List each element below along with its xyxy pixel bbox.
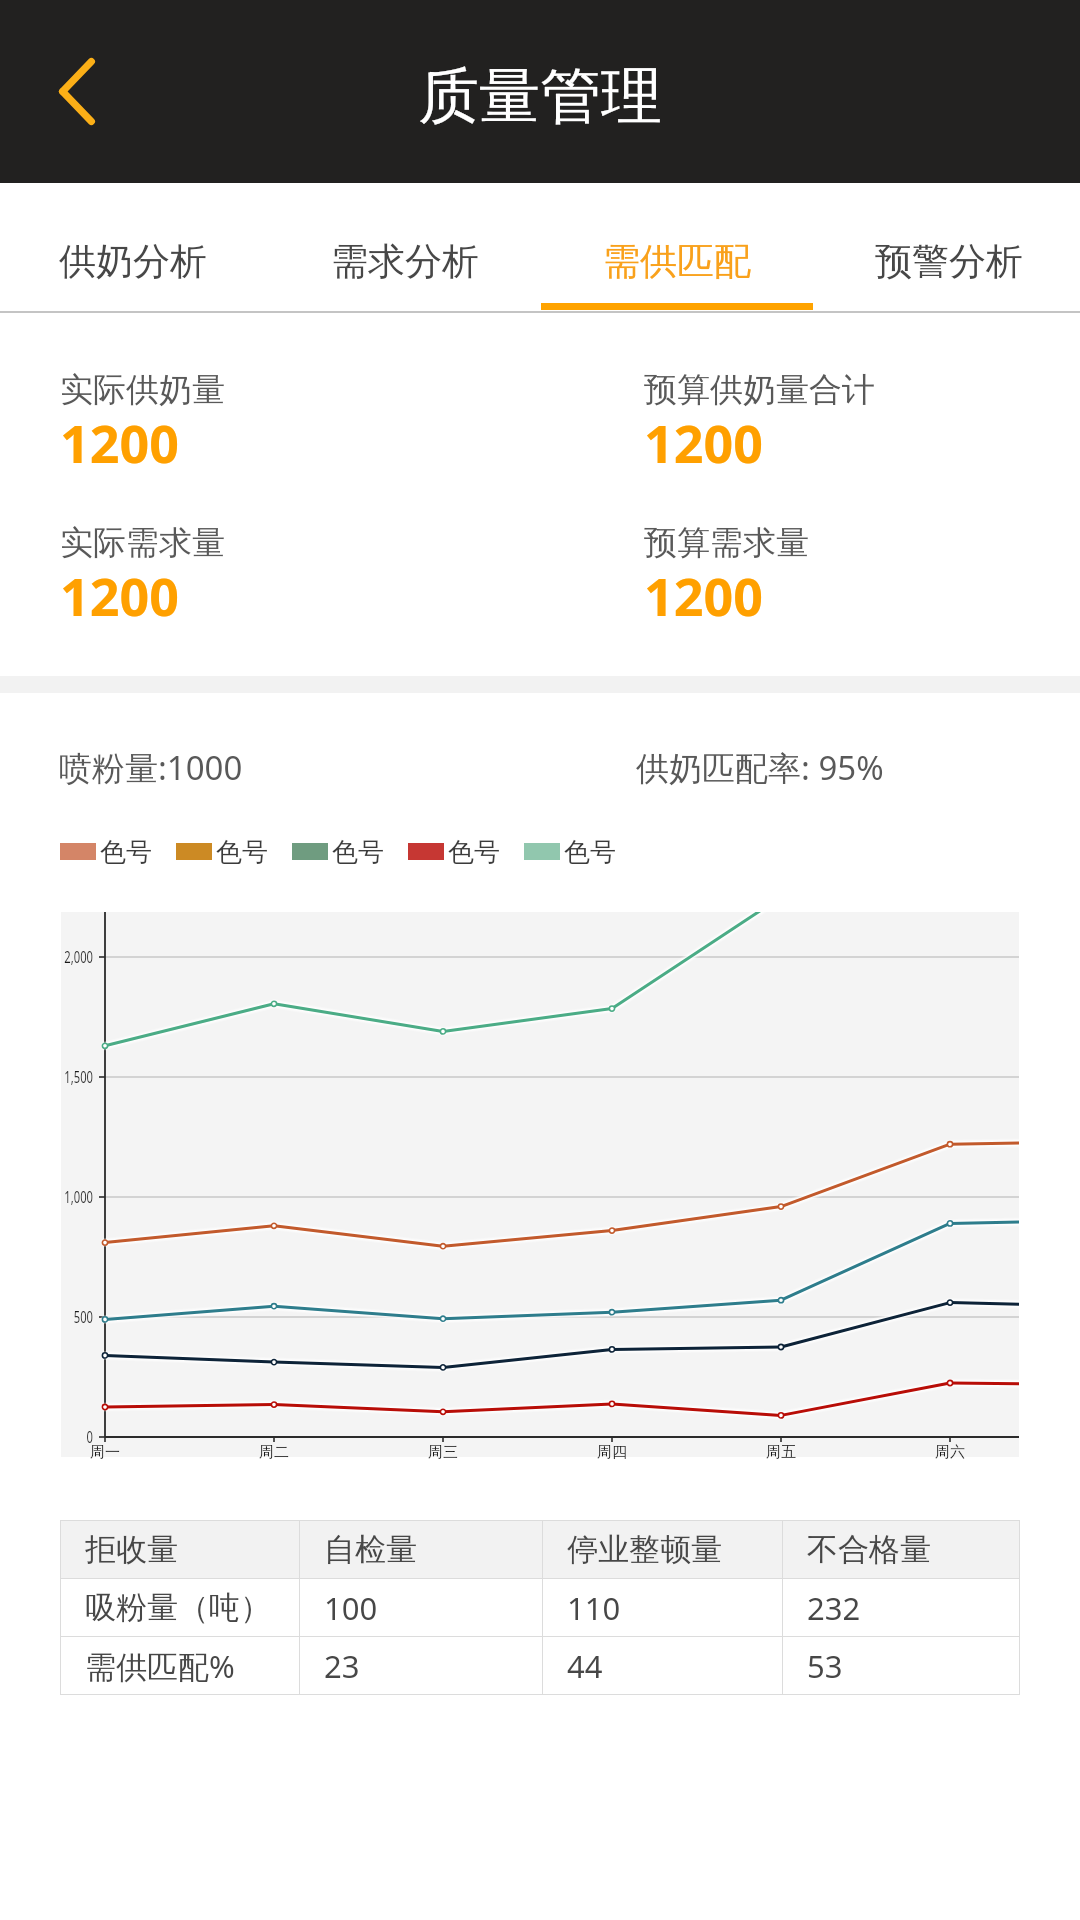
- staticText: 实际供奶量: [60, 369, 225, 411]
- button[interactable]: 100: [300, 1579, 542, 1636]
- button[interactable]: 预警分析: [813, 183, 1080, 311]
- button[interactable]: 供奶分析: [0, 183, 269, 311]
- staticText: 53: [807, 1645, 843, 1687]
- staticText: 需供匹配%: [85, 1645, 235, 1687]
- staticText: 2,000: [64, 946, 93, 968]
- button[interactable]: 53: [783, 1637, 1019, 1694]
- staticText: 110: [567, 1587, 621, 1629]
- staticText: 1,500: [64, 1066, 93, 1088]
- staticText: 质量管理: [418, 58, 662, 135]
- staticText: 实际需求量: [60, 522, 225, 564]
- staticText: 色号: [100, 836, 152, 869]
- button[interactable]: 需供匹配%: [61, 1637, 299, 1694]
- staticText: 色号: [448, 836, 500, 869]
- button[interactable]: 44: [543, 1637, 782, 1694]
- staticText: 232: [807, 1587, 861, 1629]
- button[interactable]: 不合格量: [783, 1521, 1019, 1578]
- staticText: 预算需求量: [644, 522, 809, 564]
- staticText: 吸粉量（吨）: [85, 1588, 271, 1627]
- button[interactable]: 自检量: [300, 1521, 542, 1578]
- button[interactable]: 拒收量: [61, 1521, 299, 1578]
- staticText: 1200: [60, 560, 179, 631]
- button[interactable]: 110: [543, 1579, 782, 1636]
- button[interactable]: 吸粉量（吨）: [61, 1579, 299, 1636]
- staticText: 0: [86, 1426, 93, 1448]
- staticText: 需求分析: [331, 238, 479, 285]
- staticText: 预警分析: [875, 238, 1023, 285]
- staticText: 周五: [766, 1443, 796, 1462]
- staticText: 1200: [60, 407, 179, 478]
- staticText: 周一: [90, 1443, 120, 1462]
- staticText: 供奶匹配率: 95%: [636, 745, 884, 790]
- staticText: 不合格量: [807, 1530, 931, 1569]
- button[interactable]: 停业整顿量: [543, 1521, 782, 1578]
- staticText: 周四: [597, 1443, 627, 1462]
- staticText: 1200: [644, 407, 763, 478]
- staticText: 500: [73, 1306, 93, 1328]
- staticText: 100: [324, 1587, 378, 1629]
- staticText: 1,000: [64, 1186, 93, 1208]
- staticText: 自检量: [324, 1530, 417, 1569]
- staticText: 停业整顿量: [567, 1530, 722, 1569]
- staticText: 色号: [216, 836, 268, 869]
- staticText: 周六: [935, 1443, 965, 1462]
- staticText: 周三: [428, 1443, 458, 1462]
- staticText: 需供匹配: [603, 238, 751, 285]
- staticText: 喷粉量:1000: [59, 745, 243, 790]
- staticText: 预算供奶量合计: [644, 369, 875, 411]
- button[interactable]: 23: [300, 1637, 542, 1694]
- button[interactable]: 需供匹配: [541, 183, 813, 311]
- staticText: 23: [324, 1645, 360, 1687]
- button[interactable]: 232: [783, 1579, 1019, 1636]
- staticText: 供奶分析: [59, 238, 207, 285]
- button[interactable]: Back: [29, 28, 125, 124]
- button[interactable]: 需求分析: [269, 183, 541, 311]
- staticText: 色号: [564, 836, 616, 869]
- staticText: 色号: [332, 836, 384, 869]
- staticText: 44: [567, 1645, 603, 1687]
- staticText: 拒收量: [85, 1530, 178, 1569]
- staticText: 1200: [644, 560, 763, 631]
- staticText: 周二: [259, 1443, 289, 1462]
